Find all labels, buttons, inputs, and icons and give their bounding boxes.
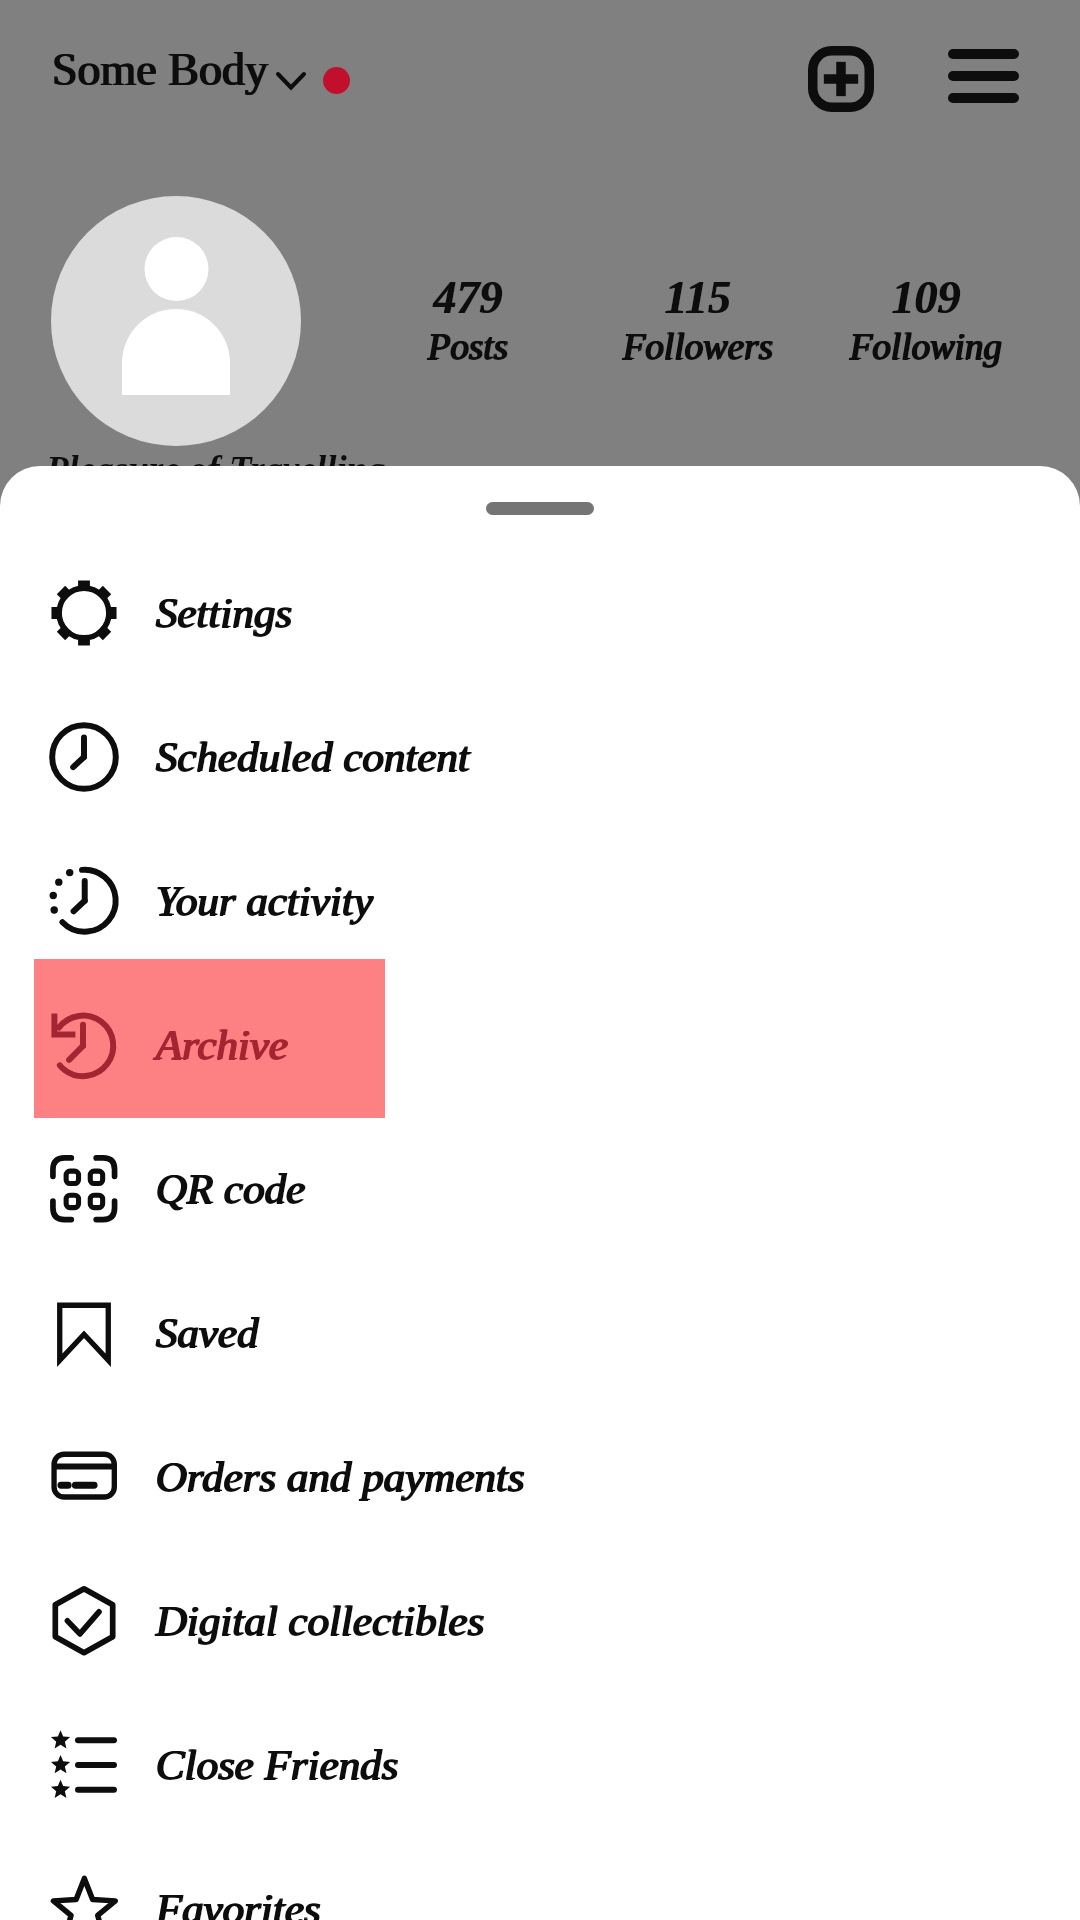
staticText: Some Body bbox=[51, 44, 267, 95]
staticText: QR code bbox=[157, 1165, 307, 1213]
staticText: Following bbox=[850, 326, 1003, 367]
staticText: Close Friends bbox=[155, 1741, 398, 1789]
staticText: Posts bbox=[428, 326, 509, 367]
button[interactable]: Saved bbox=[0, 1261, 1080, 1405]
staticText: Favorites bbox=[155, 1886, 320, 1920]
staticText: Your activity bbox=[155, 877, 372, 925]
staticText: Saved bbox=[156, 1309, 259, 1357]
staticText: 115 bbox=[665, 272, 732, 323]
staticText: Some Body bbox=[53, 44, 269, 95]
staticText: Scheduled content bbox=[157, 733, 472, 781]
staticText: Digital collectibles bbox=[157, 1597, 486, 1645]
button[interactable]: Some Body bbox=[30, 24, 380, 114]
staticText: Posts bbox=[429, 326, 510, 367]
staticText: QR code bbox=[156, 1165, 306, 1213]
staticText: Followers bbox=[624, 326, 775, 367]
button[interactable]: QR code bbox=[0, 1117, 1080, 1261]
staticText: Saved bbox=[155, 1309, 258, 1357]
button[interactable]: Profile photo bbox=[51, 196, 301, 446]
staticText: QR code bbox=[155, 1166, 305, 1214]
staticText: Archive bbox=[155, 1022, 288, 1070]
staticText: Your activity bbox=[156, 877, 373, 925]
staticText: Digital collectibles bbox=[156, 1597, 485, 1645]
button[interactable]: 109 bbox=[785, 272, 1065, 367]
staticText: QR code bbox=[155, 1165, 305, 1213]
staticText: Pleasure of Travelling bbox=[46, 449, 386, 490]
staticText: Favorites bbox=[156, 1885, 321, 1920]
staticText: Archive bbox=[155, 1021, 288, 1069]
staticText: Followers bbox=[622, 326, 773, 367]
staticText: 479 bbox=[434, 272, 503, 323]
button[interactable]: Close Friends bbox=[0, 1693, 1080, 1837]
staticText: Saved bbox=[155, 1310, 258, 1358]
staticText: Following bbox=[849, 327, 1002, 368]
button[interactable]: New post bbox=[796, 34, 886, 124]
staticText: Followers bbox=[623, 326, 774, 367]
staticText: Followers bbox=[622, 327, 773, 368]
staticText: Scheduled content bbox=[156, 733, 471, 781]
staticText: Archive bbox=[157, 1021, 290, 1069]
staticText: Digital collectibles bbox=[155, 1597, 484, 1645]
button[interactable]: 479 bbox=[327, 272, 607, 367]
button[interactable]: Orders and payments bbox=[0, 1405, 1080, 1549]
staticText: Close Friends bbox=[157, 1741, 400, 1789]
button[interactable]: Favorites bbox=[0, 1837, 1080, 1920]
button[interactable]: Archive bbox=[0, 973, 1080, 1117]
staticText: Posts bbox=[427, 326, 508, 367]
button[interactable]: Settings bbox=[0, 541, 1080, 685]
staticText: Settings bbox=[155, 590, 292, 638]
staticText: Favorites bbox=[157, 1885, 322, 1920]
staticText: Close Friends bbox=[156, 1741, 399, 1789]
staticText: Favorites bbox=[155, 1885, 320, 1920]
staticText: Orders and payments bbox=[155, 1453, 524, 1501]
staticText: Close Friends bbox=[155, 1742, 398, 1790]
staticText: Scheduled content bbox=[155, 733, 470, 781]
staticText: Scheduled content bbox=[155, 734, 470, 782]
button[interactable]: 115 bbox=[557, 272, 837, 367]
staticText: Following bbox=[849, 326, 1002, 367]
staticText: Orders and payments bbox=[157, 1453, 526, 1501]
button[interactable]: Menu bbox=[938, 31, 1028, 121]
staticText: Saved bbox=[157, 1309, 260, 1357]
staticText: 109 bbox=[892, 272, 961, 323]
staticText: Settings bbox=[155, 589, 292, 637]
staticText: Posts bbox=[427, 327, 508, 368]
staticText: Settings bbox=[156, 589, 293, 637]
staticText: Archive bbox=[156, 1021, 289, 1069]
staticText: Some Body bbox=[52, 44, 268, 95]
staticText: Following bbox=[851, 326, 1004, 367]
staticText: Digital collectibles bbox=[155, 1598, 484, 1646]
staticText: Your activity bbox=[155, 878, 372, 926]
staticText: 479 bbox=[433, 272, 502, 323]
staticText: Orders and payments bbox=[156, 1453, 525, 1501]
staticText: Settings bbox=[157, 589, 294, 637]
staticText: Orders and payments bbox=[155, 1454, 524, 1502]
button[interactable]: Digital collectibles bbox=[0, 1549, 1080, 1693]
staticText: 115 bbox=[664, 272, 731, 323]
button[interactable]: Your activity bbox=[0, 829, 1080, 973]
button[interactable]: Scheduled content bbox=[0, 685, 1080, 829]
staticText: 109 bbox=[891, 272, 960, 323]
staticText: Your activity bbox=[157, 877, 374, 925]
